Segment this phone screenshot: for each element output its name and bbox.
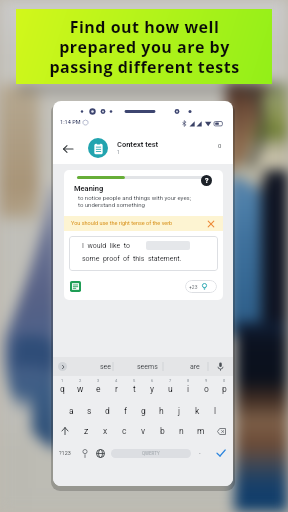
staticText: ? — [205, 177, 209, 185]
staticText: I would like to — [82, 242, 130, 250]
staticText: You should use the right tense of the ve… — [71, 220, 173, 226]
staticText: 5 — [133, 378, 136, 383]
button[interactable]: g — [134, 398, 152, 420]
button[interactable]: 0 — [215, 376, 233, 398]
staticText: a — [69, 406, 74, 416]
button[interactable]: b — [153, 420, 172, 442]
button[interactable]: Emoji — [77, 442, 92, 464]
staticText: o — [204, 384, 209, 394]
button[interactable]: Change language — [92, 442, 108, 464]
staticText: +23 — [189, 284, 198, 290]
button[interactable]: Backspace — [210, 420, 233, 442]
button[interactable]: ?123 — [53, 442, 77, 464]
button[interactable]: 2 — [71, 376, 89, 398]
staticText: x — [103, 426, 108, 436]
staticText: to notice people and things with your ey… — [78, 194, 191, 209]
staticText: 3 — [97, 378, 100, 383]
staticText: 2 — [79, 378, 82, 383]
staticText: p — [222, 384, 227, 394]
button[interactable]: Back — [58, 139, 77, 158]
button[interactable]: see — [90, 357, 122, 376]
button[interactable]: f — [116, 398, 134, 420]
button[interactable]: Shift — [53, 420, 76, 442]
staticText: Meaning — [74, 184, 104, 193]
staticText: some proof of this statement. — [82, 255, 182, 263]
staticText: seems — [137, 363, 158, 371]
button[interactable]: j — [170, 398, 188, 420]
staticText: g — [141, 406, 146, 416]
staticText: l — [214, 406, 217, 416]
staticText: v — [141, 426, 146, 436]
button[interactable]: 5 — [125, 376, 143, 398]
staticText: e — [96, 384, 101, 394]
staticText: ?123 — [59, 450, 71, 456]
button[interactable]: n — [172, 420, 191, 442]
staticText: 7 — [169, 378, 172, 383]
staticText: 1:14 PM — [60, 119, 81, 125]
staticText: h — [159, 406, 164, 416]
staticText: see — [100, 363, 112, 371]
button[interactable]: s — [80, 398, 98, 420]
button[interactable]: 6 — [143, 376, 161, 398]
button[interactable]: h — [152, 398, 170, 420]
staticText: t — [133, 384, 136, 394]
staticText: w — [77, 384, 84, 394]
staticText: m — [197, 426, 205, 436]
staticText: QWERTY — [142, 451, 160, 456]
staticText: 0 — [223, 378, 226, 383]
staticText: 9 — [205, 378, 208, 383]
staticText: i — [187, 384, 190, 394]
button[interactable]: are — [179, 357, 211, 376]
button[interactable]: k — [188, 398, 206, 420]
button[interactable]: seems — [131, 357, 163, 376]
staticText: . — [199, 448, 201, 456]
staticText: 0 — [218, 142, 222, 149]
button[interactable]: 4 — [107, 376, 125, 398]
button[interactable]: QWERTY — [111, 449, 191, 458]
button[interactable]: 1 — [53, 376, 71, 398]
button[interactable]: l — [206, 398, 224, 420]
button[interactable]: c — [115, 420, 134, 442]
staticText: k — [195, 406, 200, 416]
staticText: f — [124, 406, 127, 416]
button[interactable]: Dismiss — [207, 220, 215, 228]
button[interactable]: 8 — [179, 376, 197, 398]
staticText: q — [60, 384, 65, 394]
button[interactable]: 9 — [197, 376, 215, 398]
button[interactable]: 3 — [89, 376, 107, 398]
button[interactable]: +23 — [185, 280, 217, 293]
staticText: Context test — [117, 140, 159, 149]
staticText: d — [105, 406, 110, 416]
button[interactable]: Help — [201, 175, 212, 186]
staticText: 8 — [187, 378, 190, 383]
staticText: c — [122, 426, 127, 436]
button[interactable]: m — [191, 420, 210, 442]
button[interactable]: 7 — [161, 376, 179, 398]
staticText: 1 — [117, 149, 120, 155]
staticText: z — [84, 426, 89, 436]
button[interactable]: d — [98, 398, 116, 420]
staticText: are — [190, 363, 200, 371]
staticText: Find out how well prepared you are by pa… — [49, 16, 240, 77]
staticText: 6 — [151, 378, 154, 383]
staticText: 1 — [61, 378, 64, 383]
staticText: s — [87, 406, 92, 416]
staticText: 4 — [115, 378, 118, 383]
button[interactable]: z — [76, 420, 96, 442]
staticText: b — [160, 426, 165, 436]
button[interactable]: x — [96, 420, 115, 442]
staticText: u — [168, 384, 173, 394]
staticText: n — [179, 426, 184, 436]
staticText: j — [178, 406, 181, 416]
button[interactable]: More suggestions — [58, 362, 67, 371]
button[interactable]: Voice input — [216, 362, 225, 371]
button[interactable]: a — [62, 398, 80, 420]
staticText: y — [150, 384, 155, 394]
button[interactable]: v — [134, 420, 153, 442]
staticText: r — [115, 384, 118, 394]
button[interactable]: Enter — [209, 442, 233, 464]
button[interactable]: Dictionary — [70, 281, 81, 292]
